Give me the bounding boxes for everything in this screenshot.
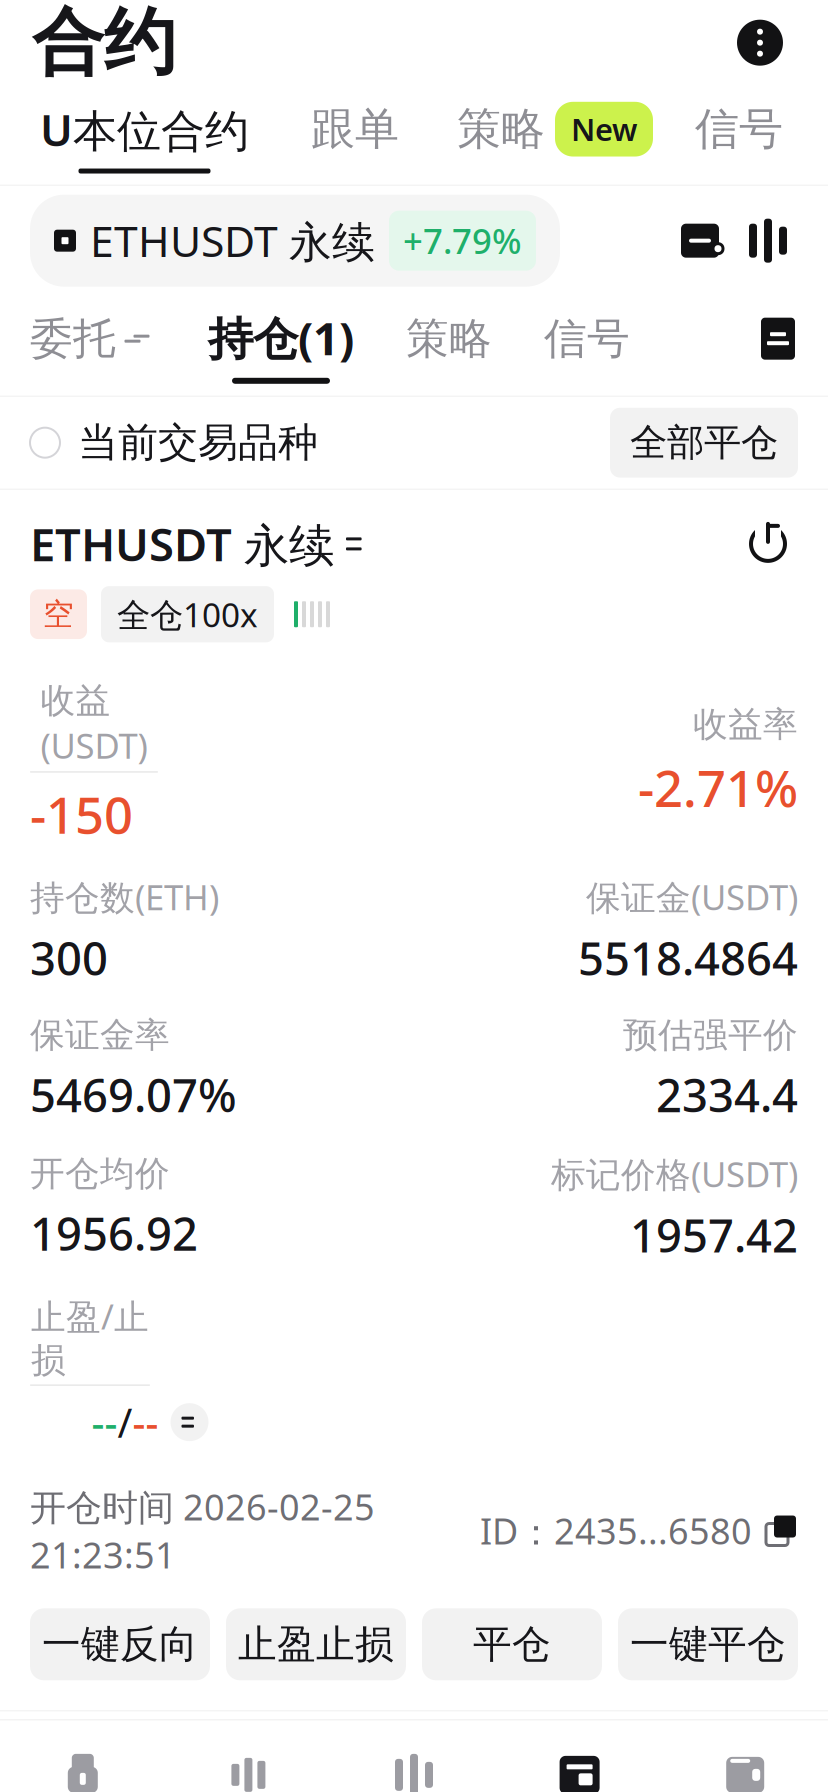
staticText: U本位合约 <box>40 100 249 158</box>
button[interactable]: 全部平仓 <box>610 408 798 478</box>
staticText: 平仓 <box>473 1621 551 1668</box>
button[interactable]: 资产 <box>662 1746 828 1792</box>
button[interactable]: 一键反向 <box>30 1608 210 1680</box>
button[interactable]: 交易 <box>331 1746 497 1792</box>
staticText: 一键平仓 <box>630 1621 786 1668</box>
staticText: -150 <box>30 780 133 848</box>
staticText: 止盈/止损 <box>31 1293 149 1382</box>
button[interactable]: 委托 <box>30 312 150 379</box>
button[interactable]: 持仓(1) <box>208 308 354 384</box>
staticText: 标记价格(USDT) <box>551 1151 798 1197</box>
button[interactable]: ID：2435...6580 <box>480 1506 798 1554</box>
staticText: ETHUSDT 永续 <box>90 212 375 269</box>
staticText: 持仓数(ETH) <box>30 874 219 920</box>
button[interactable]: 当前交易品种 <box>30 408 318 477</box>
staticText: -- <box>91 1396 117 1449</box>
staticText: -2.71% <box>638 754 798 821</box>
staticText: -- <box>132 1396 158 1449</box>
button[interactable]: 平仓 <box>422 1608 602 1680</box>
staticText: 委托 <box>30 312 116 365</box>
staticText: 收益率 <box>693 703 798 746</box>
staticText: New <box>571 109 637 149</box>
staticText: 空 <box>43 595 74 633</box>
button[interactable]: 首页 <box>0 1746 166 1792</box>
button[interactable]: 信号 <box>544 312 630 379</box>
button[interactable]: 止盈止损 <box>226 1608 406 1680</box>
staticText: +7.79% <box>403 218 522 264</box>
button[interactable]: -- <box>91 1396 208 1449</box>
button[interactable]: 订单记录 <box>758 316 798 376</box>
staticText: ETHUSDT 永续 <box>30 514 334 574</box>
staticText: 5469.07% <box>30 1064 237 1125</box>
staticText: 1956.92 <box>30 1203 198 1263</box>
button[interactable]: 合约 <box>497 1746 662 1792</box>
staticText: 保证金率 <box>30 1014 170 1057</box>
staticText: 信号 <box>695 102 783 156</box>
staticText: 策略 <box>406 312 492 365</box>
staticText: 收益 (USDT) <box>40 676 147 768</box>
button[interactable]: 行情 <box>166 1746 331 1792</box>
staticText: 开仓均价 <box>30 1152 170 1195</box>
staticText: / <box>117 1396 132 1449</box>
staticText: 当前交易品种 <box>78 418 318 467</box>
staticText: 信号 <box>544 312 630 365</box>
button[interactable]: 图表 <box>664 205 736 277</box>
staticText: 全部平仓 <box>630 420 778 466</box>
staticText: 持仓(1) <box>208 308 354 368</box>
staticText: 保证金(USDT) <box>586 874 798 920</box>
staticText: 300 <box>30 928 108 988</box>
button[interactable]: 策略 <box>457 102 653 171</box>
staticText: 一键反向 <box>42 1621 198 1668</box>
button[interactable]: 策略 <box>406 312 492 379</box>
button[interactable]: 分享 <box>738 514 798 574</box>
button[interactable]: 信号 <box>695 102 783 171</box>
staticText: ID：2435...6580 <box>480 1506 752 1554</box>
staticText: 跟单 <box>311 102 399 156</box>
staticText: 止盈止损 <box>238 1621 394 1668</box>
staticText: 预估强平价 <box>623 1014 798 1057</box>
button[interactable]: 一键平仓 <box>618 1608 798 1680</box>
staticText: 5518.4864 <box>578 928 798 988</box>
staticText: 开仓时间 2026-02-25 21:23:51 <box>30 1483 375 1578</box>
staticText: 合约 <box>32 0 176 87</box>
button[interactable]: U本位合约 <box>36 100 253 173</box>
staticText: 1957.42 <box>630 1205 798 1265</box>
button[interactable]: ETHUSDT 永续 <box>30 514 366 574</box>
button[interactable]: 更多 <box>724 7 796 79</box>
button[interactable]: 跟单 <box>311 102 399 171</box>
button[interactable]: ETHUSDT 永续 <box>30 195 560 287</box>
button[interactable]: 深度 <box>736 205 800 277</box>
staticText: 全仓100x <box>117 592 258 636</box>
staticText: 2334.4 <box>656 1064 798 1125</box>
staticText: 策略 <box>457 102 545 156</box>
